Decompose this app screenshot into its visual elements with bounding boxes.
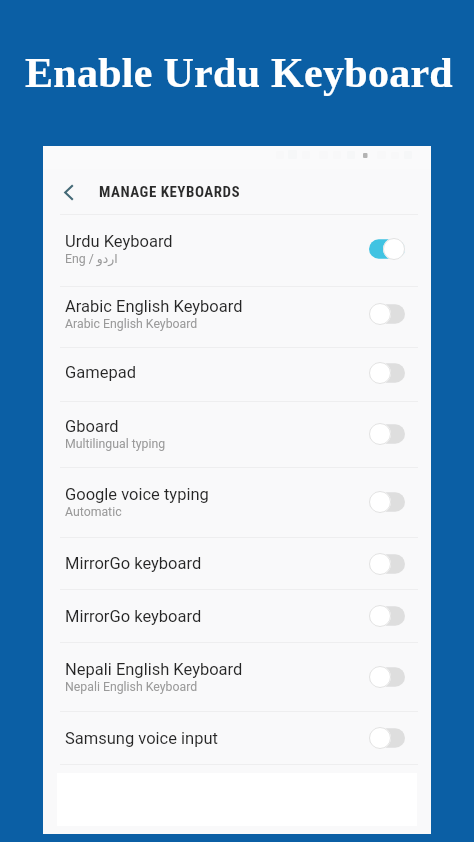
button[interactable]: Samsung voice input [43,712,431,764]
staticText: Arabic English Keyboard [65,317,198,331]
button[interactable]: Gamepad [43,348,431,401]
button[interactable]: MirrorGo keyboard [43,590,431,642]
staticText: Urdu Keyboard [65,232,173,251]
staticText: Arabic English Keyboard [65,297,243,316]
staticText: Enable Urdu Keyboard [2,50,474,97]
button[interactable]: Google voice typing [43,468,431,537]
staticText: Automatic [65,505,122,519]
staticText: MirrorGo keyboard [65,607,202,626]
button[interactable]: Urdu Keyboard [43,215,431,286]
button[interactable]: MirrorGo keyboard [43,538,431,589]
staticText: Eng / اردو [65,252,118,266]
button[interactable]: Back [54,177,84,207]
staticText: Gamepad [65,363,136,382]
staticText: Gboard [65,417,119,436]
button[interactable]: Nepali English Keyboard [43,643,431,711]
staticText: MirrorGo keyboard [65,554,202,573]
staticText: Multilingual typing [65,437,166,451]
staticText: MANAGE KEYBOARDS [99,183,241,201]
staticText: Nepali English Keyboard [65,660,243,679]
staticText: Samsung voice input [65,729,218,748]
button[interactable]: Arabic English Keyboard [43,287,431,347]
staticText: Google voice typing [65,485,209,504]
staticText: Nepali English Keyboard [65,680,198,694]
button[interactable]: Gboard [43,402,431,467]
